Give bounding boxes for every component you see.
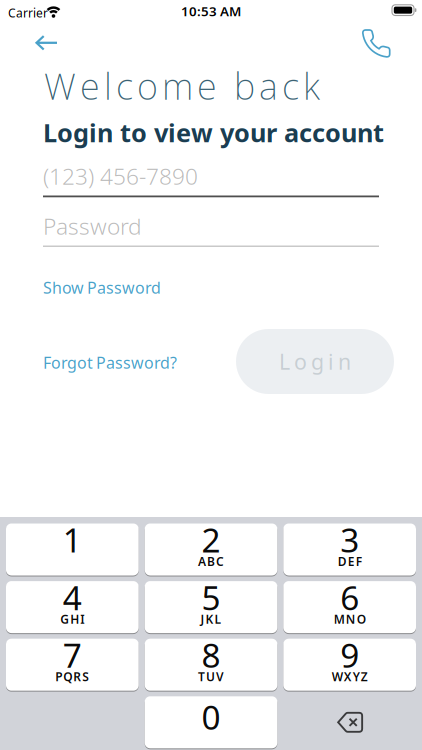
button[interactable]: 3 (283, 523, 416, 576)
staticText: A B C (198, 553, 224, 569)
button[interactable]: 6 (283, 581, 416, 634)
button[interactable]: 2 (145, 523, 277, 576)
staticText: 1 (63, 517, 82, 562)
staticText: Login to view your account (43, 115, 384, 149)
staticText: L o g i n (279, 347, 351, 376)
staticText: 5 (201, 575, 220, 619)
button[interactable]: 9 (283, 639, 416, 692)
staticText: W X Y Z (332, 669, 368, 685)
button[interactable]: Phone number (43, 161, 379, 197)
button[interactable]: Password (43, 211, 379, 247)
staticText: Forgot Password? (43, 352, 177, 373)
button[interactable]: Delete (336, 711, 366, 733)
button[interactable]: L o g i n (236, 329, 394, 394)
staticText: Carrier (8, 5, 48, 21)
staticText: T U V (198, 669, 224, 685)
staticText: (123) 456-7890 (43, 161, 198, 191)
button[interactable]: Back (35, 36, 58, 50)
staticText: 4 (63, 575, 82, 619)
staticText: Password (43, 211, 142, 241)
staticText: 8 (201, 633, 220, 677)
button[interactable]: 7 (6, 639, 139, 692)
staticText: W e l c o m e b a c k (44, 62, 320, 110)
button[interactable]: 1 (6, 523, 139, 576)
button[interactable]: Call support (360, 27, 392, 59)
staticText: 9 (340, 633, 359, 677)
button[interactable]: Forgot Password? (43, 352, 177, 373)
button[interactable]: Show Password (43, 277, 161, 298)
staticText: 7 (63, 633, 82, 677)
staticText: 3 (340, 517, 359, 562)
staticText: 6 (340, 575, 359, 619)
button[interactable]: 8 (145, 639, 277, 692)
staticText: 10:53 AM (181, 2, 241, 20)
button[interactable]: 0 (145, 696, 277, 749)
staticText: J K L (200, 611, 221, 627)
staticText: G H I (60, 611, 84, 627)
staticText: P Q R S (55, 669, 89, 685)
button[interactable]: 4 (6, 581, 139, 634)
staticText: D E F (338, 553, 362, 569)
staticText: Show Password (43, 277, 161, 298)
staticText: 0 (201, 695, 220, 739)
button[interactable]: 5 (145, 581, 277, 634)
staticText: M N O (334, 611, 366, 627)
staticText: 2 (201, 517, 220, 562)
